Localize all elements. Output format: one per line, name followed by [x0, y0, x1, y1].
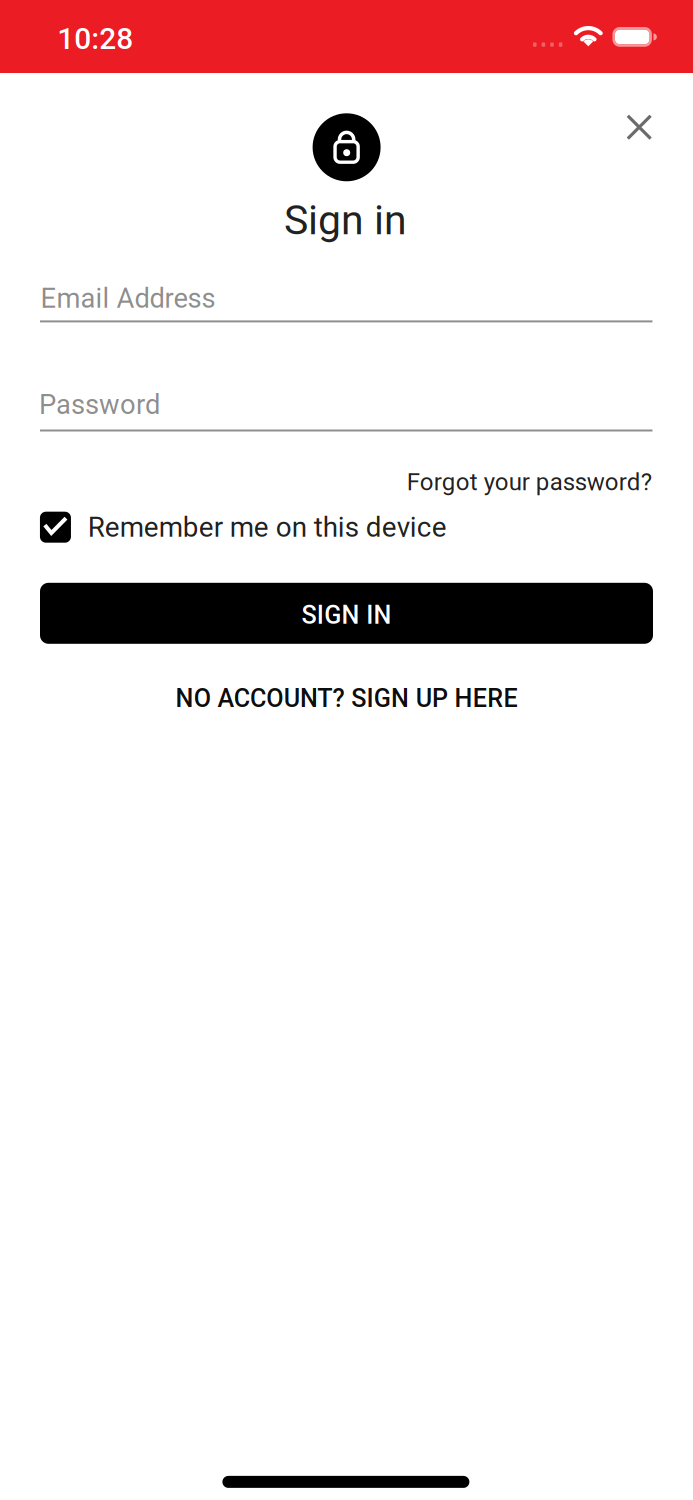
button[interactable]: Email Address	[40, 270, 653, 328]
staticText: Sign in	[284, 196, 407, 244]
staticText: Remember me on this device	[88, 511, 447, 543]
button[interactable]: Close	[617, 105, 661, 149]
staticText: Password	[39, 389, 160, 421]
staticText: SIGN IN	[301, 600, 392, 630]
button[interactable]: SIGN IN	[40, 583, 653, 644]
staticText: NO ACCOUNT? SIGN UP HERE	[176, 684, 517, 713]
staticText: 10:28	[57, 21, 133, 56]
staticText: Forgot your password?	[407, 468, 652, 496]
staticText: Email Address	[40, 282, 215, 314]
button[interactable]: Forgot your password?	[407, 468, 652, 496]
button[interactable]: Remember me on this device	[40, 511, 447, 543]
button[interactable]: NO ACCOUNT? SIGN UP HERE	[176, 684, 517, 713]
button[interactable]: Password	[40, 377, 653, 435]
